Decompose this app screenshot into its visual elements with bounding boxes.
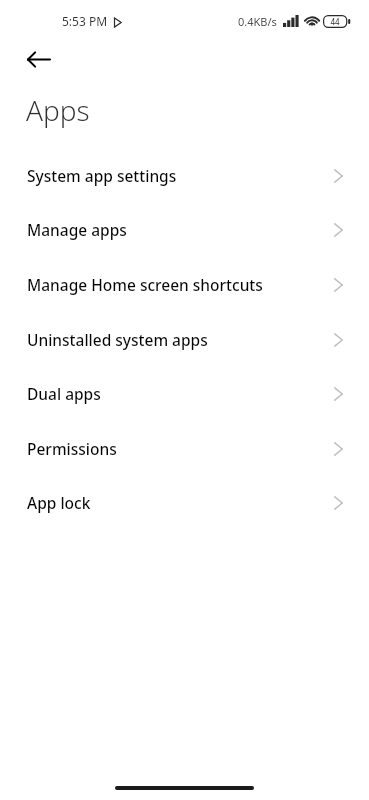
button[interactable]: Manage Home screen shortcuts	[0, 257, 369, 312]
button[interactable]: Dual apps	[0, 366, 369, 421]
staticText: System app settings	[27, 165, 177, 186]
button[interactable]: App lock	[0, 475, 369, 530]
staticText: App lock	[27, 492, 91, 513]
button[interactable]: Back	[14, 41, 62, 77]
staticText: 0.4KB/s	[238, 14, 277, 29]
staticText: Manage Home screen shortcuts	[27, 274, 263, 295]
staticText: Manage apps	[27, 219, 127, 240]
staticText: Permissions	[27, 438, 117, 459]
staticText: 44	[330, 16, 340, 27]
button[interactable]: Manage apps	[0, 202, 369, 257]
staticText: 5:53 PM	[62, 13, 108, 29]
button[interactable]: Permissions	[0, 421, 369, 476]
staticText: Uninstalled system apps	[27, 329, 208, 350]
button[interactable]: Uninstalled system apps	[0, 312, 369, 367]
staticText: Dual apps	[27, 383, 101, 404]
staticText: Apps	[26, 91, 90, 129]
button[interactable]: System app settings	[0, 148, 369, 203]
